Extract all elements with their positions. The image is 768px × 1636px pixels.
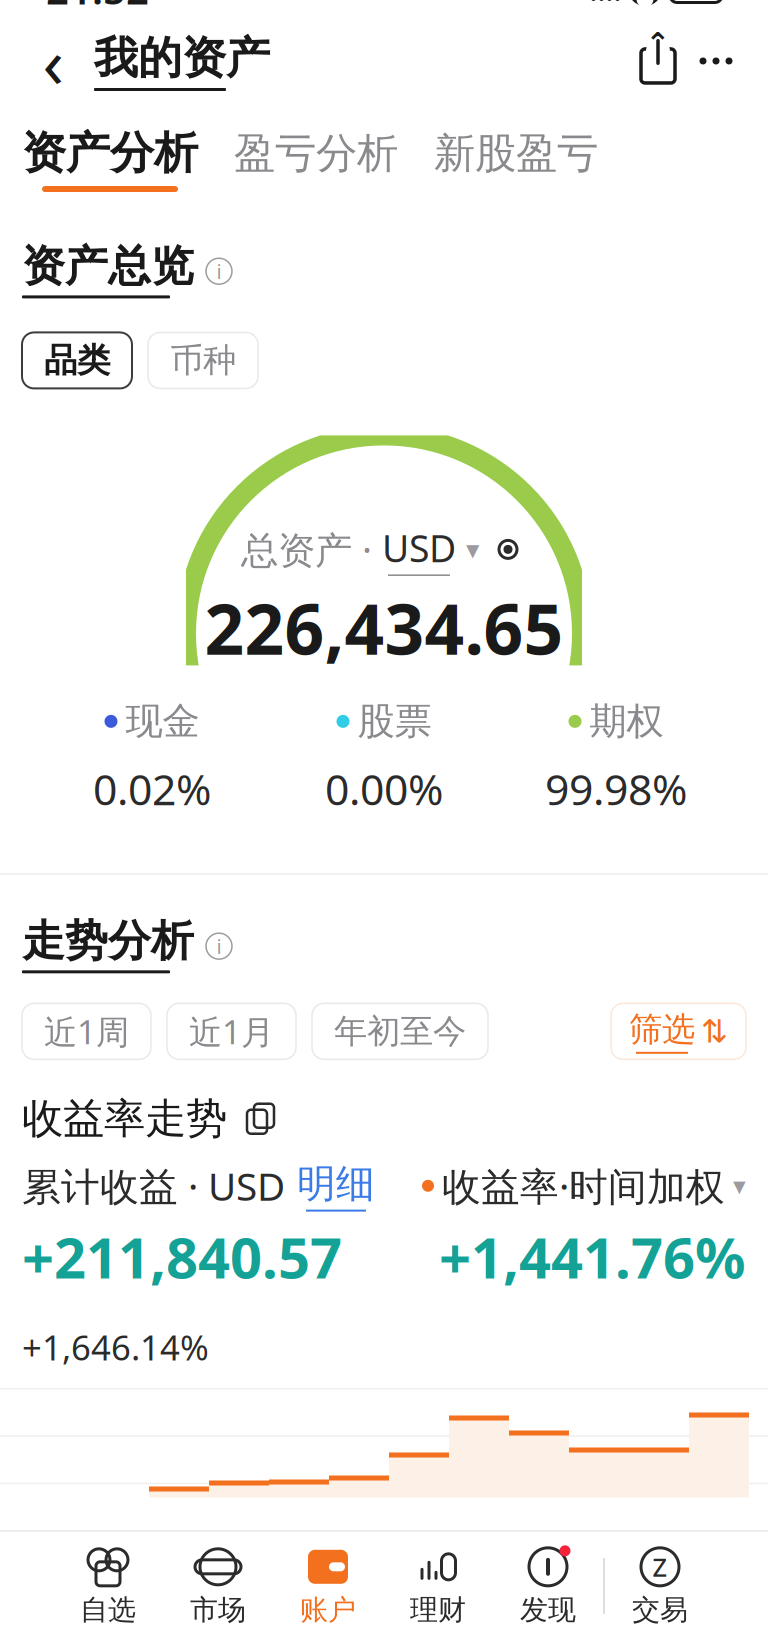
staticText: 期权 <box>589 698 663 744</box>
staticText: ⌃ <box>645 26 670 60</box>
staticText: 明细 <box>297 1160 375 1208</box>
staticText: USD <box>382 523 456 572</box>
staticText: ▾ <box>466 534 479 565</box>
staticText: 99.98% <box>545 760 687 817</box>
button[interactable]: USD <box>382 523 456 576</box>
staticText: 品类 <box>44 340 110 381</box>
staticText: 现金 <box>125 698 199 744</box>
staticText: 发现 <box>520 1593 576 1627</box>
staticText: ⇅ <box>701 1013 728 1049</box>
button[interactable]: 理财 <box>383 1538 493 1634</box>
staticText: i <box>216 933 221 959</box>
button[interactable]: Back <box>22 26 84 96</box>
staticText: +1,441.76% <box>439 1219 746 1294</box>
button[interactable]: 新股盈亏 <box>434 126 598 179</box>
button[interactable]: More <box>686 31 746 91</box>
staticText: 走势分析 <box>22 915 194 967</box>
button[interactable]: 筛选 <box>611 1003 746 1059</box>
staticText: 收益率走势 <box>22 1093 227 1144</box>
staticText: 理财 <box>410 1593 466 1627</box>
staticText: +1,646.14% <box>22 1324 209 1370</box>
staticText: 币种 <box>170 340 236 381</box>
button[interactable]: Hide amount <box>489 534 527 564</box>
staticText: 21:52 <box>46 0 149 15</box>
staticText: 0.00% <box>325 760 443 817</box>
staticText: +211,840.57 <box>22 1220 342 1294</box>
staticText: 累计收益 · USD <box>22 1160 285 1211</box>
staticText: 收益率·时间加权 <box>442 1160 725 1211</box>
staticText: 年初至今 <box>334 1011 466 1052</box>
button[interactable]: 盈亏分析 <box>234 126 398 179</box>
staticText: ▾ <box>733 1171 746 1200</box>
staticText: 自选 <box>80 1593 136 1627</box>
button[interactable]: Fullscreen chart <box>239 1098 281 1140</box>
button[interactable]: 近1周 <box>22 1003 151 1059</box>
staticText: 0.02% <box>93 760 211 817</box>
button[interactable]: 品类 <box>22 332 132 388</box>
staticText: 近1月 <box>189 1009 274 1053</box>
button[interactable]: 年初至今 <box>312 1003 488 1059</box>
staticText: 交易 <box>632 1593 688 1627</box>
staticText: 筛选 <box>629 1009 695 1050</box>
staticText: 盈亏分析 <box>234 128 398 179</box>
button[interactable]: 明细 <box>297 1160 375 1212</box>
staticText: ‹ <box>42 15 63 107</box>
button[interactable]: 市场 <box>163 1538 273 1634</box>
staticText: 账户 <box>300 1593 356 1627</box>
staticText: 新股盈亏 <box>434 128 598 179</box>
button[interactable]: 币种 <box>148 332 258 388</box>
staticText: 我的资产 <box>94 31 270 85</box>
staticText: 近1周 <box>44 1009 129 1053</box>
staticText: 226,434.65 <box>204 582 563 674</box>
button[interactable]: Z <box>605 1538 715 1634</box>
button[interactable]: 自选 <box>53 1538 163 1634</box>
staticText: 股票 <box>357 698 431 744</box>
button[interactable]: 账户 <box>273 1538 383 1634</box>
staticText: i <box>216 258 221 284</box>
staticText: 总资产 · <box>241 525 372 574</box>
staticText: 资产总览 <box>22 240 194 292</box>
button[interactable]: 发现 <box>493 1538 603 1634</box>
button[interactable]: Share <box>630 31 686 91</box>
staticText: 市场 <box>190 1593 246 1627</box>
button[interactable]: 近1月 <box>167 1003 296 1059</box>
staticText: 资产分析 <box>22 126 198 180</box>
staticText: Z <box>652 1550 667 1584</box>
button[interactable]: 资产分析 <box>22 126 198 192</box>
